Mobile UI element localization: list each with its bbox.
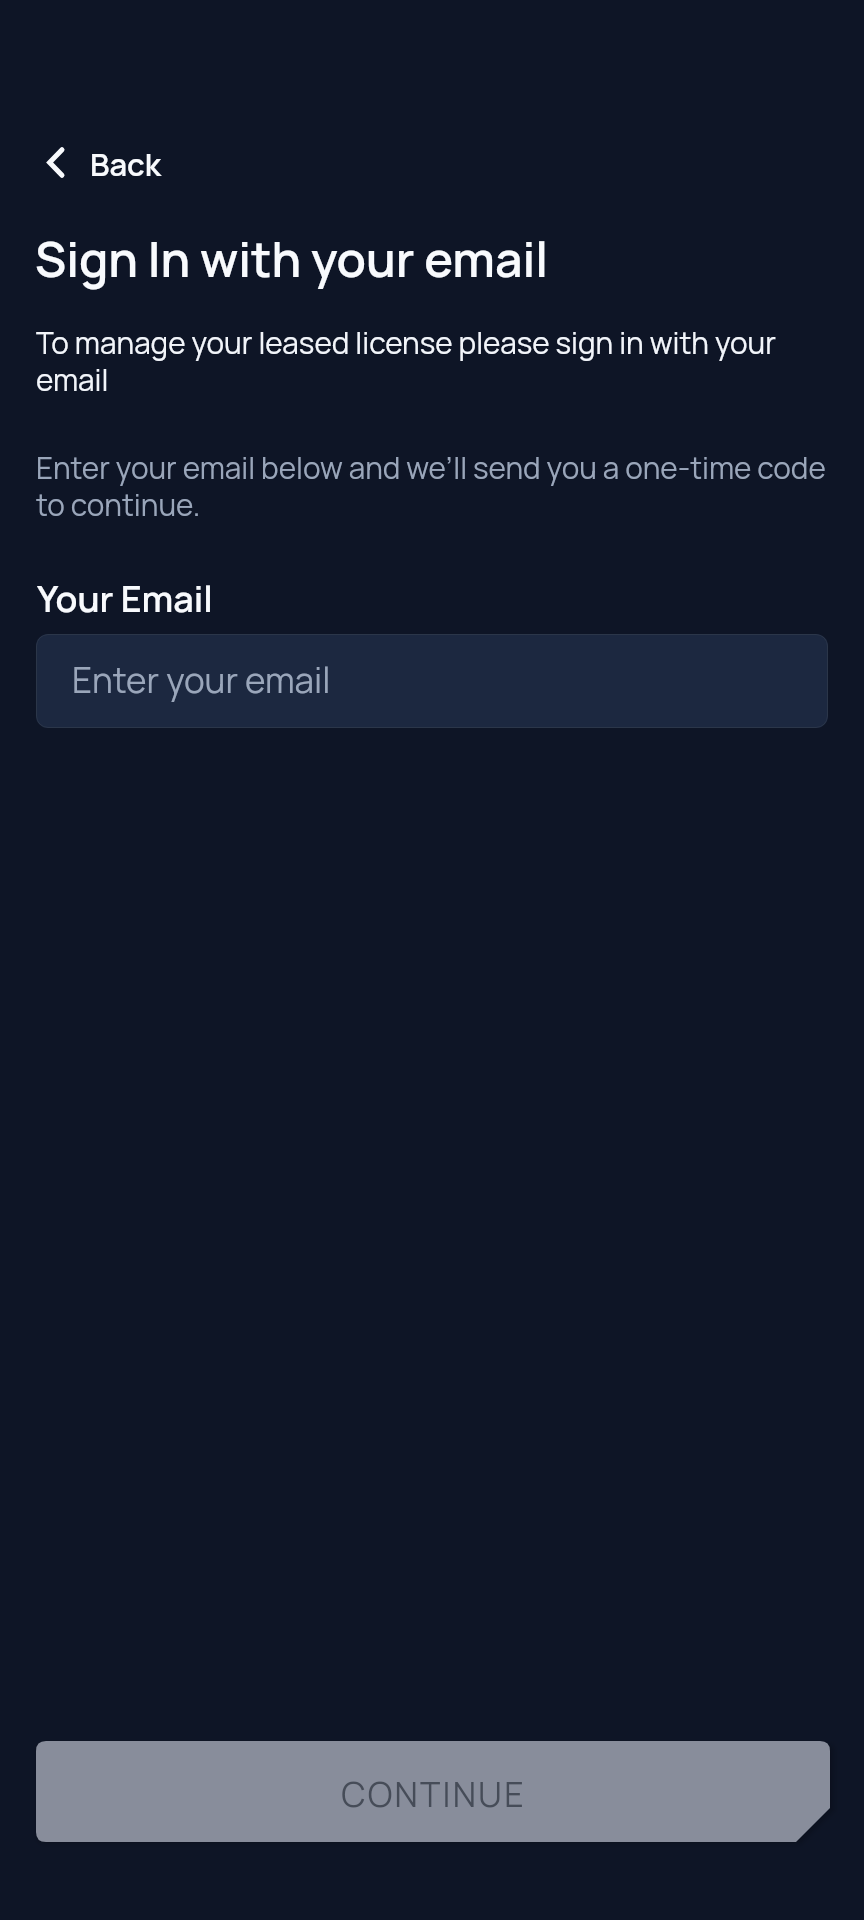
button[interactable]: Back [30,134,182,190]
staticText: To manage your leased license please sig… [36,325,832,399]
button[interactable]: CONTINUE [36,1741,830,1842]
staticText: Enter your email below and we’ll send yo… [36,450,832,524]
staticText: Enter your email [72,660,331,702]
staticText: Your Email [37,579,213,621]
staticText: CONTINUE [341,1771,526,1817]
staticText: Back [90,142,161,186]
staticText: Sign In with your email [35,232,549,290]
button[interactable]: Enter your email [36,634,828,728]
